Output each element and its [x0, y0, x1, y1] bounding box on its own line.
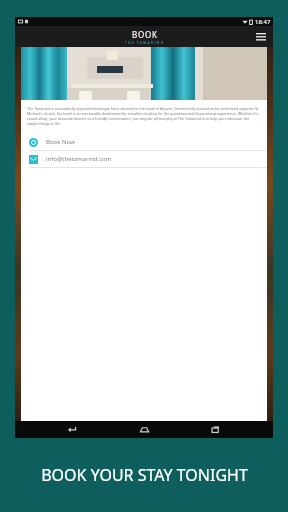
button[interactable]: Back — [57, 421, 87, 438]
staticText: The Tamarind is a beautifully appointed … — [27, 106, 261, 126]
button[interactable]: Home — [129, 421, 159, 438]
staticText: Book Now — [46, 138, 75, 146]
button[interactable]: info@thetamarind.com — [21, 151, 267, 167]
button[interactable]: Recents — [201, 421, 231, 438]
staticText: T H E T A M A R I N D — [125, 41, 164, 45]
button[interactable]: Menu — [253, 29, 269, 45]
staticText: 18:47 — [255, 18, 271, 26]
button[interactable]: Book Now — [21, 134, 267, 150]
staticText: BOOK — [132, 29, 158, 40]
staticText: BOOK YOUR STAY TONIGHT — [41, 464, 248, 486]
staticText: info@thetamarind.com — [46, 155, 112, 163]
